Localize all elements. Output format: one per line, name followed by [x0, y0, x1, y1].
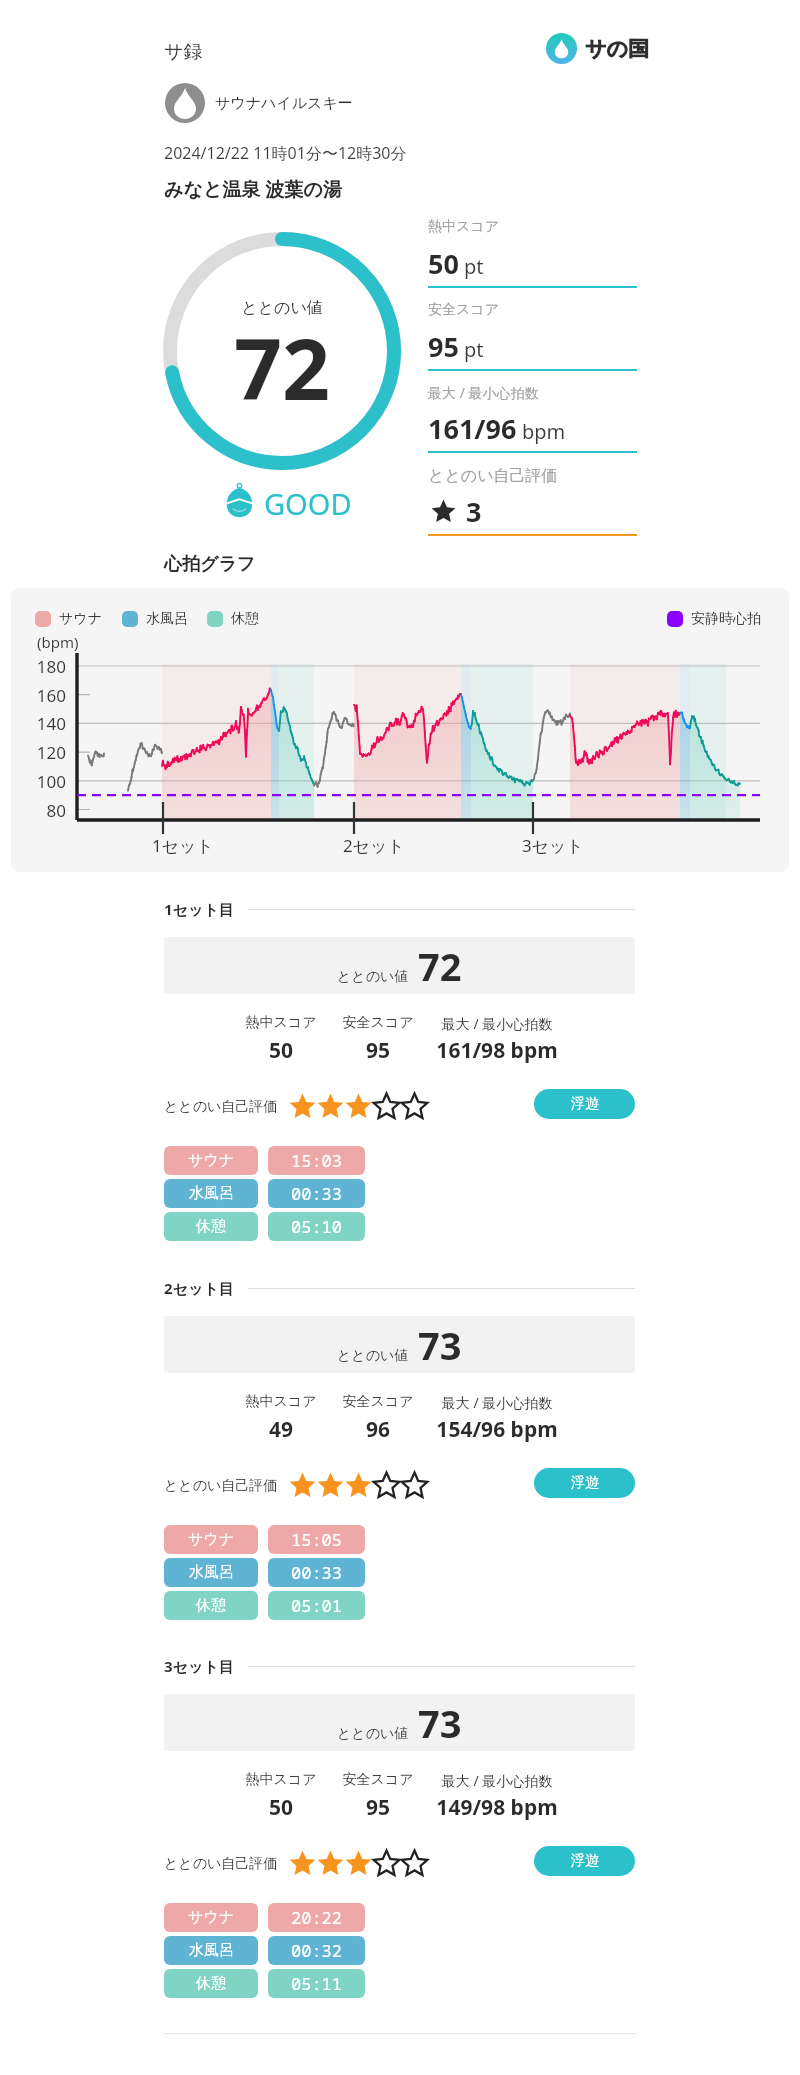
staticText: 154/96 bpm	[407, 1415, 587, 1444]
staticText: 浮遊	[571, 1095, 599, 1113]
staticText: 水風呂	[146, 610, 188, 628]
staticText: 休憩	[196, 1217, 226, 1236]
button[interactable]: 浮遊	[534, 1468, 635, 1498]
staticText: 水風呂	[189, 1941, 234, 1960]
staticText: ととのい自己評価	[164, 1855, 278, 1873]
staticText: 50	[191, 1036, 371, 1065]
staticText: 3セット目	[164, 1656, 234, 1676]
staticText: 3セット	[522, 834, 584, 857]
staticText: 73	[418, 1697, 462, 1749]
staticText: 15:03	[291, 1149, 342, 1172]
staticText: ととのい自己評価	[164, 1477, 278, 1495]
button[interactable]: 浮遊	[534, 1846, 635, 1876]
staticText: サウナハイルスキー	[215, 94, 353, 113]
staticText: 休憩	[196, 1974, 226, 1993]
staticText: 休憩	[196, 1596, 226, 1615]
staticText: 72	[163, 310, 401, 424]
staticText: サウナ	[59, 610, 102, 628]
staticText: 熱中スコア	[191, 1393, 371, 1411]
staticText: 1セット	[152, 834, 214, 857]
staticText: 15:05	[291, 1528, 342, 1551]
staticText: 安全スコア	[288, 1393, 468, 1411]
staticText: 149/98 bpm	[407, 1793, 587, 1822]
staticText: サの国	[585, 36, 649, 62]
staticText: 73	[418, 1319, 462, 1371]
staticText: 00:32	[291, 1939, 342, 1962]
button[interactable]: サウナハイルスキー	[165, 83, 353, 123]
staticText: 浮遊	[571, 1852, 599, 1870]
staticText: みなと温泉 波葉の湯	[164, 176, 342, 202]
staticText: 安静時心拍	[691, 610, 761, 628]
staticText: ととのい自己評価	[164, 1098, 278, 1116]
staticText: 最大 / 最小心拍数	[407, 1771, 587, 1790]
staticText: 最大 / 最小心拍数	[407, 1393, 587, 1412]
staticText: pt	[464, 336, 484, 363]
staticText: GOOD	[264, 484, 352, 523]
staticText: 熱中スコア	[428, 218, 499, 236]
staticText: サウナ	[188, 1908, 235, 1927]
staticText: (bpm)	[37, 632, 79, 652]
staticText: pt	[464, 253, 484, 280]
staticText: 水風呂	[189, 1563, 234, 1582]
staticText: 180	[15, 655, 66, 678]
staticText: 161/98 bpm	[407, 1036, 587, 1065]
staticText: 80	[15, 799, 66, 822]
staticText: 2セット	[343, 834, 405, 857]
staticText: 20:22	[291, 1906, 342, 1929]
staticText: ととのい自己評価	[428, 466, 558, 486]
staticText: 72	[418, 940, 462, 992]
staticText: 休憩	[231, 610, 259, 628]
staticText: 1セット目	[164, 899, 234, 919]
staticText: 05:01	[291, 1594, 342, 1617]
button[interactable]: 浮遊	[534, 1089, 635, 1119]
staticText: 49	[191, 1415, 371, 1444]
button[interactable]: サの国	[546, 33, 649, 64]
staticText: bpm	[522, 418, 566, 445]
staticText: 50	[428, 245, 459, 282]
staticText: 161/96	[428, 410, 517, 447]
staticText: 熱中スコア	[191, 1014, 371, 1032]
staticText: 100	[15, 770, 66, 793]
staticText: 05:11	[291, 1972, 342, 1995]
staticText: 安全スコア	[428, 301, 499, 319]
staticText: ととのい値	[163, 298, 401, 318]
staticText: 最大 / 最小心拍数	[407, 1014, 587, 1033]
staticText: ととのい値	[337, 1347, 409, 1365]
staticText: サウナ	[188, 1151, 235, 1170]
staticText: サウナ	[188, 1530, 235, 1549]
staticText: 安全スコア	[288, 1014, 468, 1032]
staticText: 95	[288, 1036, 468, 1065]
staticText: サ録	[164, 40, 203, 64]
staticText: 95	[428, 328, 459, 365]
staticText: 00:33	[291, 1561, 342, 1584]
staticText: 最大 / 最小心拍数	[428, 383, 539, 402]
staticText: 160	[15, 684, 66, 707]
staticText: ととのい値	[337, 1725, 409, 1743]
staticText: 熱中スコア	[191, 1771, 371, 1789]
staticText: 00:33	[291, 1182, 342, 1205]
staticText: 安全スコア	[288, 1771, 468, 1789]
staticText: 140	[15, 712, 66, 735]
staticText: 95	[288, 1793, 468, 1822]
staticText: 120	[15, 741, 66, 764]
staticText: 2セット目	[164, 1278, 234, 1298]
staticText: ととのい値	[337, 968, 409, 986]
staticText: 50	[191, 1793, 371, 1822]
staticText: 05:10	[291, 1215, 342, 1238]
staticText: 3	[466, 493, 482, 530]
staticText: 2024/12/22 11時01分〜12時30分	[164, 142, 407, 164]
staticText: 水風呂	[189, 1184, 234, 1203]
staticText: 96	[288, 1415, 468, 1444]
staticText: 浮遊	[571, 1474, 599, 1492]
staticText: 心拍グラフ	[164, 553, 256, 576]
